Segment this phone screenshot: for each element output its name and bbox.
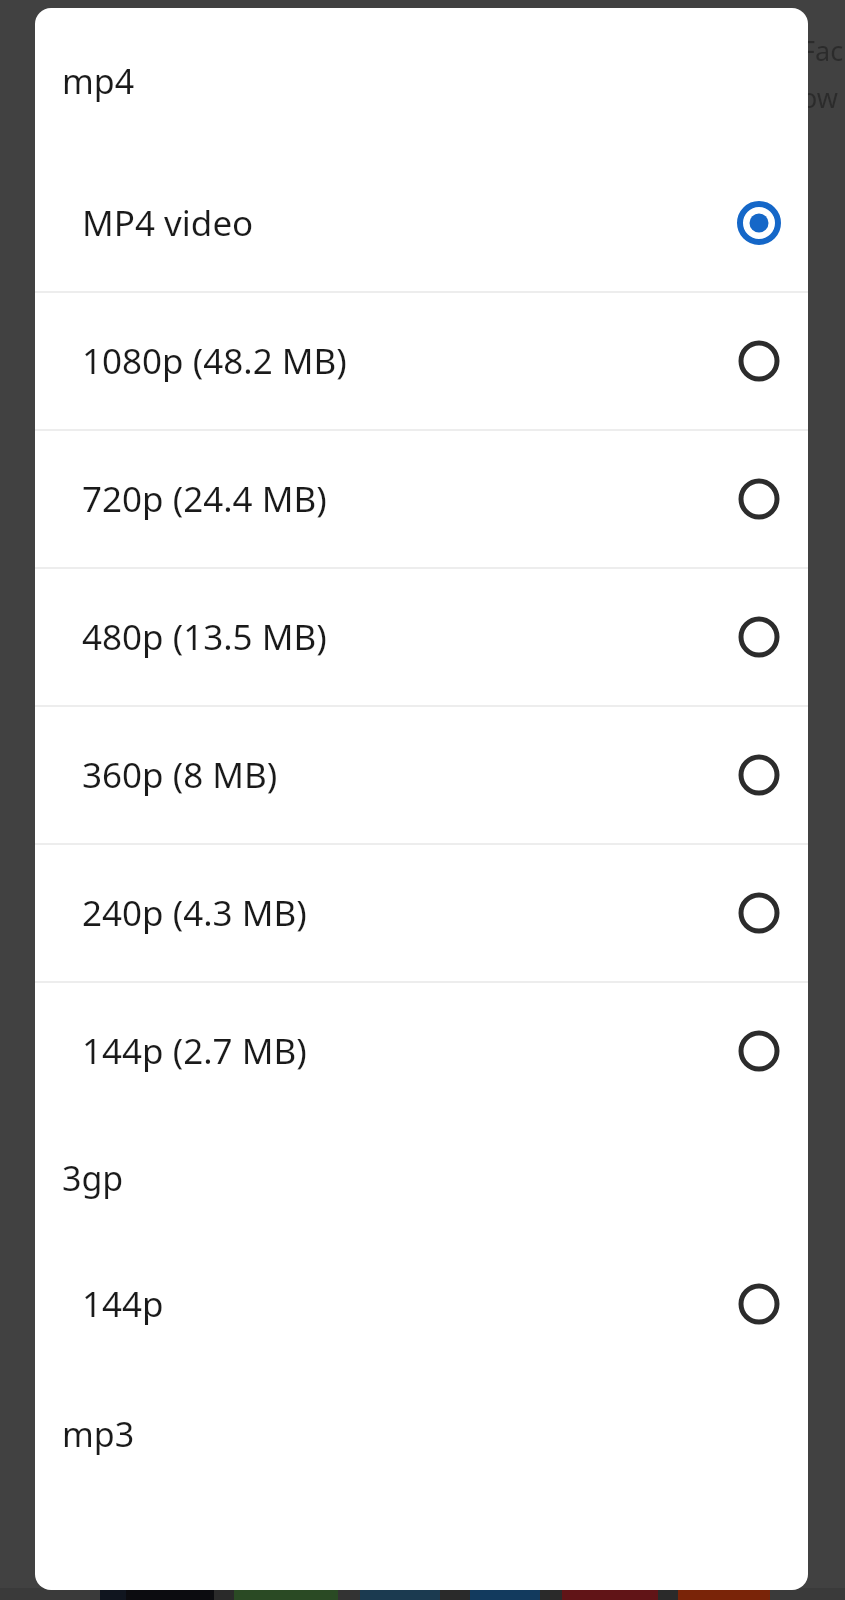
staticText: 144p (2.7 MB) — [82, 1027, 307, 1075]
button[interactable]: 720p (24.4 MB) — [35, 431, 808, 567]
staticText: mp3 — [62, 1411, 135, 1457]
button[interactable]: 360p (8 MB) — [35, 707, 808, 843]
staticText: Fac — [801, 32, 844, 69]
staticText: ow — [801, 79, 839, 116]
staticText: 240p (4.3 MB) — [82, 889, 307, 937]
staticText: 720p (24.4 MB) — [82, 475, 327, 523]
button[interactable]: MP4 video — [35, 154, 808, 291]
staticText: 360p (8 MB) — [82, 751, 278, 799]
staticText: 144p — [82, 1280, 164, 1328]
button[interactable]: 240p (4.3 MB) — [35, 845, 808, 981]
staticText: 3gp — [62, 1155, 124, 1201]
button[interactable]: 144p (2.7 MB) — [35, 983, 808, 1119]
staticText: 480p (13.5 MB) — [82, 613, 327, 661]
button[interactable]: 480p (13.5 MB) — [35, 569, 808, 705]
button[interactable]: 144p — [35, 1237, 808, 1371]
staticText: MP4 video — [82, 199, 254, 247]
staticText: 1080p (48.2 MB) — [82, 337, 347, 385]
button[interactable]: 1080p (48.2 MB) — [35, 293, 808, 429]
staticText: mp4 — [62, 58, 135, 104]
